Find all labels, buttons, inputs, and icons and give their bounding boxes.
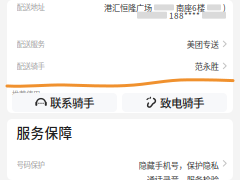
staticText: ) <box>223 1 226 13</box>
staticText: 服务保障 <box>16 122 72 142</box>
button[interactable]: 致电骑手 <box>122 93 227 112</box>
staticText: 致电骑手 <box>160 94 204 111</box>
staticText: 配送骑手 <box>16 61 44 71</box>
staticText: 号码保护 <box>16 159 44 170</box>
staticText: 配送地址 <box>16 1 44 12</box>
staticText: 通话录音，服务检验 <box>147 173 219 180</box>
button[interactable]: 配送地址 <box>7 0 233 33</box>
button[interactable]: 号码保护 <box>7 142 233 180</box>
staticText: 隐藏手机号，保护隐私 <box>139 159 219 171</box>
staticText: 南座6楼 <box>176 1 205 13</box>
staticText: 港汇恒隆广场 <box>104 1 152 13</box>
staticText: 推荐使用 <box>12 88 40 99</box>
button[interactable]: 联系骑手 <box>12 93 117 112</box>
staticText: 范永胜 <box>195 60 219 72</box>
staticText: 美团专送 <box>187 38 219 50</box>
staticText: 188**** <box>169 9 200 21</box>
button[interactable]: 配送服务 <box>7 33 233 55</box>
staticText: 配送服务 <box>16 39 44 49</box>
button[interactable]: 配送骑手 <box>7 55 233 77</box>
staticText: 联系骑手 <box>50 94 94 111</box>
